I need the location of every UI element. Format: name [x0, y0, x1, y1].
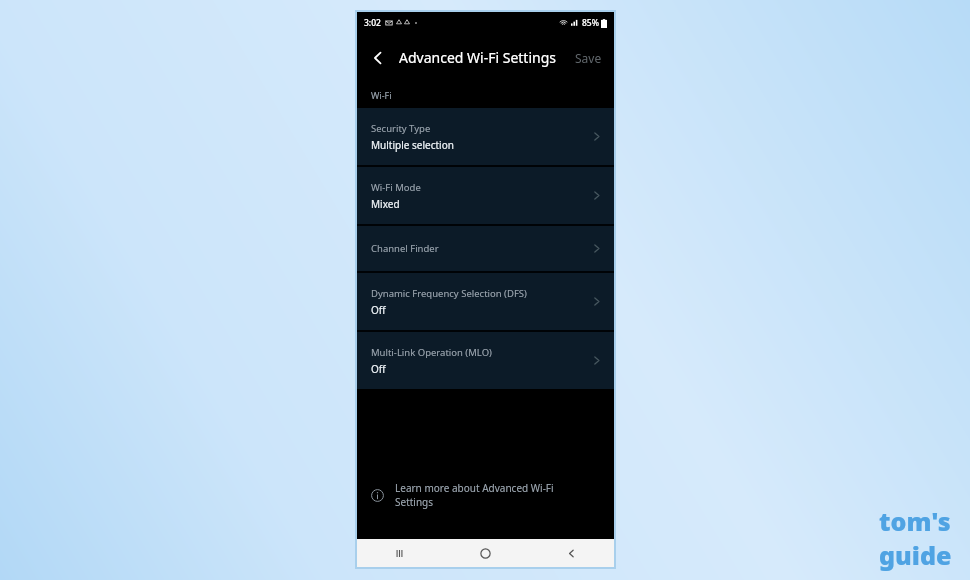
staticText: Dynamic Frequency Selection (DFS)	[371, 287, 527, 300]
button[interactable]: Back	[528, 539, 614, 567]
staticText: tom's	[879, 504, 951, 538]
button[interactable]: Channel Finder	[357, 226, 614, 271]
button[interactable]: Recent apps	[357, 539, 442, 567]
staticText: guide	[879, 538, 952, 572]
staticText: Multi-Link Operation (MLO)	[371, 346, 492, 359]
button[interactable]: Wi-Fi Mode	[357, 167, 614, 224]
staticText: Wi-Fi	[371, 89, 392, 101]
staticText: Channel Finder	[371, 242, 439, 255]
staticText: Off	[371, 303, 386, 317]
button[interactable]: Learn more about Advanced Wi-Fi Settings	[357, 481, 614, 509]
staticText: Save	[575, 50, 602, 66]
button[interactable]: Home	[442, 539, 528, 567]
button[interactable]: Dynamic Frequency Selection (DFS)	[357, 273, 614, 330]
staticText: Mixed	[371, 197, 400, 211]
staticText: Security Type	[371, 122, 431, 135]
staticText: Wi-Fi Mode	[371, 181, 421, 194]
button[interactable]: Back	[357, 37, 399, 79]
button[interactable]: Save	[563, 42, 614, 74]
staticText: Learn more about Advanced Wi-Fi Settings	[395, 481, 594, 509]
staticText: 3:02	[364, 17, 381, 29]
staticText: Multiple selection	[371, 138, 454, 152]
button[interactable]: Security Type	[357, 108, 614, 165]
button[interactable]: Multi-Link Operation (MLO)	[357, 332, 614, 389]
staticText: Off	[371, 362, 386, 376]
staticText: 85%	[582, 17, 599, 29]
staticText: Advanced Wi-Fi Settings	[399, 48, 556, 67]
